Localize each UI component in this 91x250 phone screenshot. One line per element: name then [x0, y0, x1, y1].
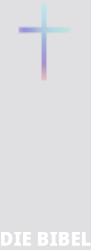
staticText: DIE BIBEL: [0, 226, 91, 250]
